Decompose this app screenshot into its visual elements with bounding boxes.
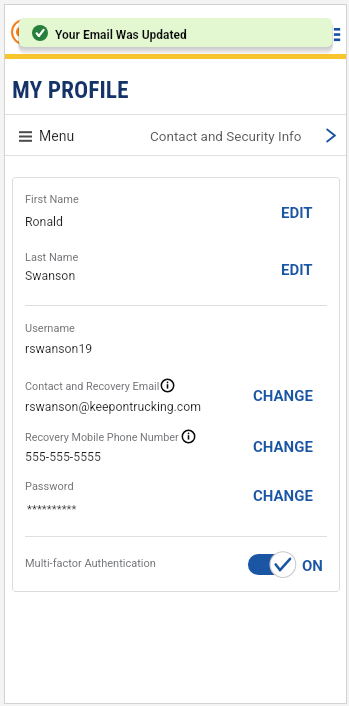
button[interactable]: CHANGE [253,387,313,402]
staticText: Last Name [25,251,79,264]
staticText: EDIT [281,261,313,276]
button[interactable]: EDIT [280,204,313,219]
staticText: CHANGE [253,487,313,502]
staticText: ON [302,557,323,575]
staticText: rswanson19 [25,342,93,356]
staticText: 555-555-5555 [25,450,101,464]
staticText: Swanson [25,269,76,283]
staticText: CHANGE [253,438,313,453]
button[interactable]: EDIT [280,261,313,276]
staticText: Your Email Was Updated [55,28,187,42]
staticText: Password [25,480,74,493]
staticText: rswanson@keepontrucking.com [25,400,202,414]
button[interactable]: More information [161,379,174,392]
button[interactable]: Multi-factor Authentication toggle, on [246,549,298,581]
staticText: Recovery Mobile Phone Number [25,431,179,444]
staticText: EDIT [281,204,313,219]
staticText: Username [25,322,75,335]
staticText: CHANGE [253,387,313,402]
staticText: ********** [27,502,77,515]
staticText: MY PROFILE [12,76,129,104]
button[interactable]: More information [182,430,195,443]
staticText: Ronald [25,215,63,229]
button[interactable]: Open navigation menu [331,24,343,45]
button[interactable]: Menu [19,126,75,146]
staticText: First Name [25,193,79,206]
button[interactable]: CHANGE [253,487,313,502]
staticText: Contact and Security Info [150,128,302,144]
staticText: Multi-factor Authentication [25,557,156,570]
staticText: Menu [39,128,75,144]
button[interactable]: Contact and Security Info [146,120,342,152]
button[interactable]: CHANGE [253,438,313,453]
staticText: Contact and Recovery Email [25,380,160,393]
